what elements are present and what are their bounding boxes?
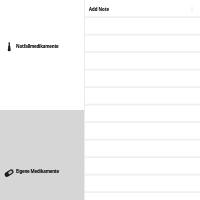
staticText: Notfallmedikamente <box>16 43 59 49</box>
staticText: Eigene Medikamente <box>16 168 60 174</box>
staticText: Add Note <box>89 6 110 12</box>
staticText: Eigene Medikamente <box>16 168 60 174</box>
staticText: Add Note <box>89 6 110 12</box>
button[interactable]: Notfallmedikamente <box>0 0 84 110</box>
staticText: Notfallmedikamente <box>16 43 59 49</box>
button[interactable]: Eigene Medikamente <box>0 110 84 200</box>
button[interactable]: More options <box>186 3 197 14</box>
